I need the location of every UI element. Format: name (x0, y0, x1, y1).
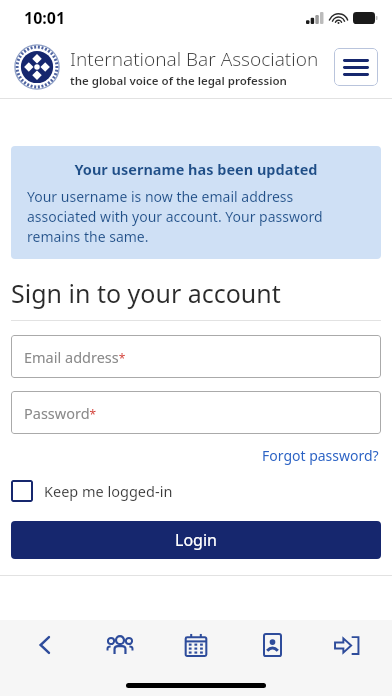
staticText: the global voice of the legal profession (70, 73, 287, 89)
button[interactable]: Email address* (11, 335, 381, 378)
button[interactable]: Password* (11, 391, 381, 434)
staticText: International Bar Association (70, 46, 319, 72)
button[interactable]: Calendar (165, 621, 227, 669)
staticText: Password* (24, 403, 97, 423)
button[interactable]: Profile (241, 621, 303, 669)
button[interactable]: Back (14, 621, 76, 669)
button[interactable]: Forgot password? (260, 444, 381, 467)
staticText: Login (175, 529, 217, 551)
button[interactable]: Sign in (316, 621, 378, 669)
staticText: Keep me logged-in (44, 481, 173, 501)
staticText: 10:01 (24, 7, 66, 29)
staticText: Forgot password? (262, 446, 379, 465)
staticText: Your username is now the email address a… (27, 187, 365, 246)
button[interactable]: Members (89, 621, 151, 669)
staticText: Sign in to your account (11, 276, 281, 310)
button[interactable]: Login (11, 521, 381, 559)
staticText: Your username has been updated (27, 159, 365, 179)
button[interactable]: Menu (334, 48, 378, 86)
button[interactable]: Keep me logged-in (11, 477, 173, 505)
staticText: Email address* (24, 347, 126, 367)
